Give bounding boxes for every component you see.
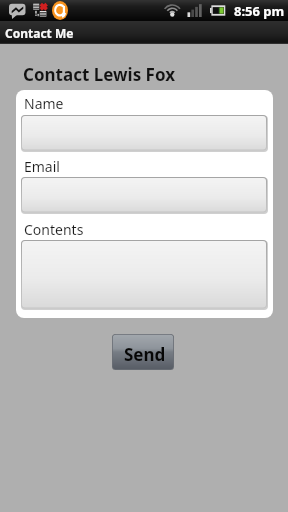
staticText: Email xyxy=(24,157,60,176)
button[interactable]: Email field xyxy=(21,177,268,214)
staticText: Contents xyxy=(24,220,84,239)
staticText: Send xyxy=(124,343,166,366)
button[interactable]: Contents field xyxy=(21,240,268,310)
button[interactable]: Name field xyxy=(21,115,268,152)
button[interactable]: Send xyxy=(112,334,174,370)
staticText: Name xyxy=(24,94,64,113)
staticText: Contact Lewis Fox xyxy=(23,63,176,86)
staticText: Contact Me xyxy=(5,25,74,41)
staticText: 8:56 pm xyxy=(234,2,285,20)
